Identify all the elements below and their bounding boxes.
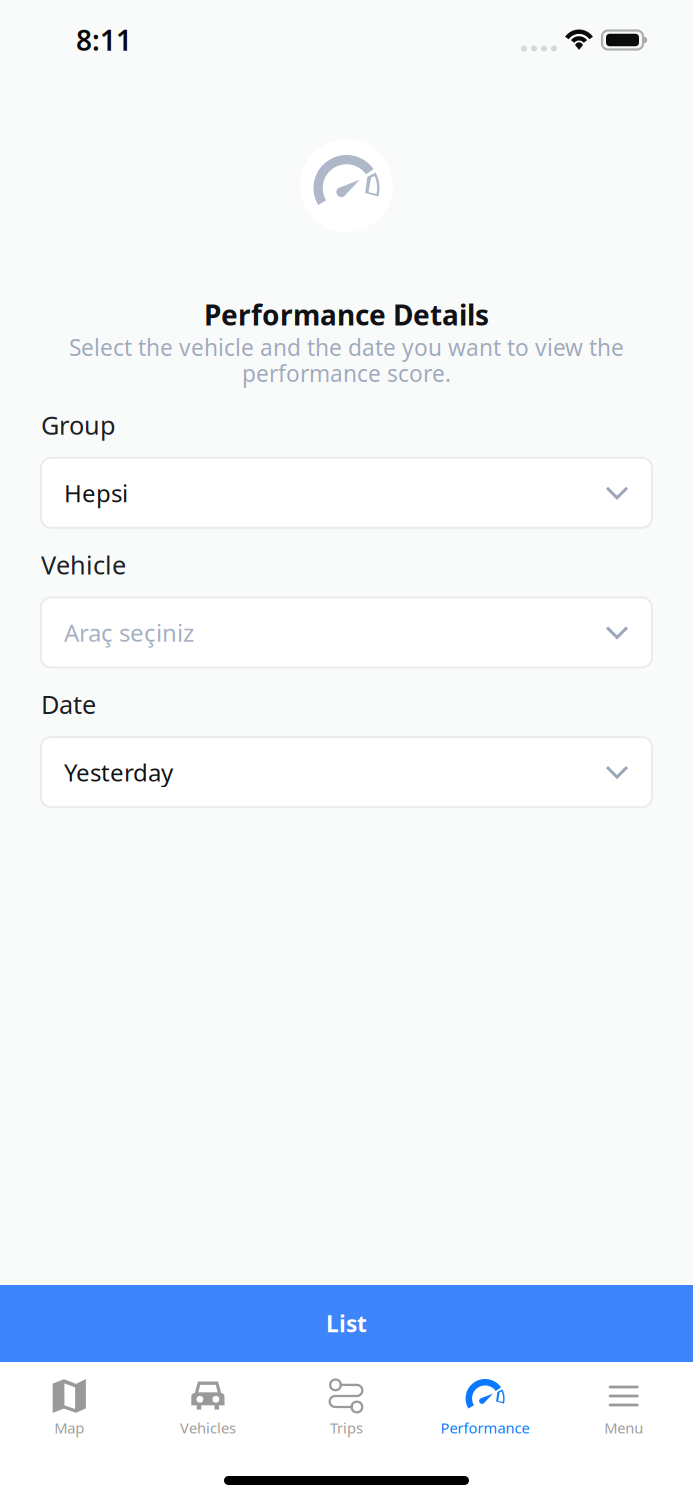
staticText: Vehicle (41, 548, 126, 581)
staticText: Select the vehicle and the date you want… (69, 332, 624, 362)
button[interactable]: Hepsi (41, 458, 652, 528)
staticText: Map (54, 1418, 84, 1437)
staticText: Araç seçiniz (64, 616, 194, 648)
staticText: Trips (330, 1418, 363, 1437)
button[interactable]: Araç seçiniz (41, 597, 652, 667)
button[interactable]: Menu (554, 1378, 693, 1437)
staticText: List (326, 1308, 367, 1338)
button[interactable]: Trips (277, 1378, 416, 1437)
button[interactable]: Vehicles (139, 1378, 277, 1437)
button[interactable]: List (0, 1285, 693, 1362)
staticText: Menu (604, 1418, 643, 1437)
button[interactable]: Map (0, 1378, 139, 1437)
staticText: Performance (441, 1418, 530, 1437)
staticText: Yesterday (64, 756, 173, 788)
staticText: performance score. (242, 358, 451, 388)
staticText: Vehicles (180, 1418, 236, 1437)
button[interactable]: Performance (416, 1378, 554, 1437)
staticText: Hepsi (64, 477, 128, 509)
staticText: Date (41, 687, 96, 721)
staticText: 8:11 (76, 21, 132, 59)
button[interactable]: Yesterday (41, 737, 652, 807)
staticText: Performance Details (204, 296, 489, 333)
staticText: Group (41, 408, 116, 442)
